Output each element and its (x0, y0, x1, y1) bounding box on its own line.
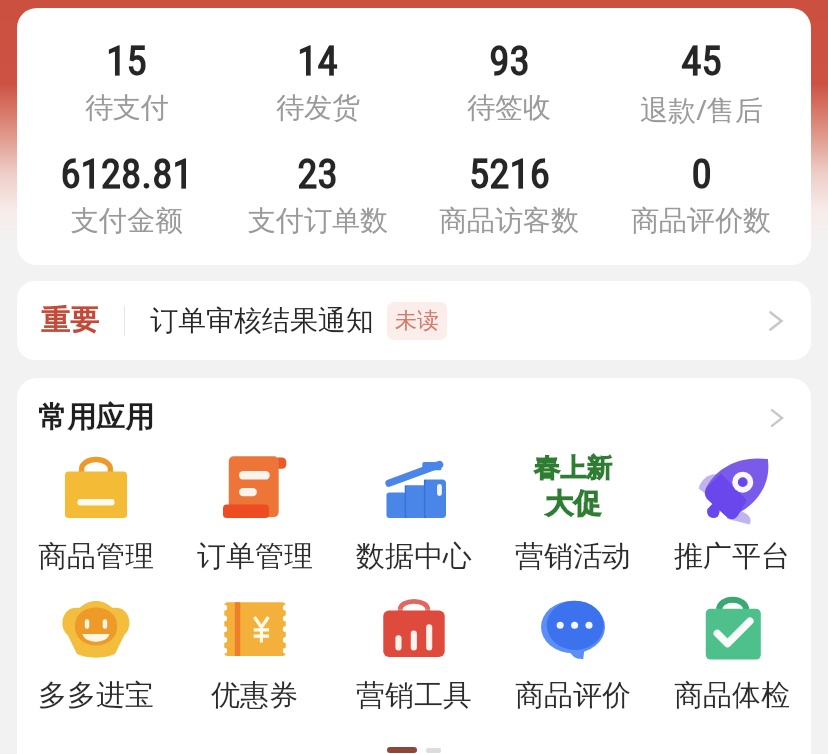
button[interactable]: 营销工具 (334, 593, 493, 714)
staticText: 商品评价数 (631, 203, 771, 238)
staticText: 商品评价 (515, 677, 631, 714)
staticText: 待发货 (276, 90, 360, 125)
other: More (763, 308, 789, 334)
staticText: 5216 (469, 150, 550, 198)
button[interactable]: 商品评价 (493, 593, 652, 714)
button[interactable]: 春上新 (493, 454, 652, 575)
staticText: 商品访客数 (439, 203, 579, 238)
staticText: 23 (297, 150, 338, 198)
staticText: 93 (489, 37, 530, 85)
staticText: 未读 (395, 307, 439, 335)
staticText: 重要 (41, 302, 99, 339)
staticText: 支付金额 (71, 203, 183, 238)
button[interactable]: 数据中心 (334, 454, 493, 575)
staticText: 45 (681, 37, 722, 85)
staticText: 支付订单数 (248, 203, 388, 238)
button[interactable]: 商品体检 (652, 593, 811, 714)
button[interactable]: 93 (413, 37, 605, 125)
staticText: 退款/售后 (640, 90, 763, 128)
staticText: 待支付 (85, 90, 169, 125)
button[interactable]: 多多进宝 (17, 593, 175, 714)
button[interactable]: 重要 (17, 281, 811, 360)
button[interactable]: 推广平台 (652, 454, 811, 575)
button[interactable]: 优惠券 (175, 593, 334, 714)
button[interactable]: 订单管理 (175, 454, 334, 575)
staticText: 订单管理 (197, 538, 313, 575)
staticText: 营销工具 (356, 677, 472, 714)
button[interactable]: 6128.81 (31, 150, 222, 238)
staticText: 订单审核结果通知 (150, 303, 374, 338)
staticText: 15 (106, 37, 147, 85)
button[interactable]: 商品管理 (17, 454, 175, 575)
staticText: 优惠券 (211, 677, 298, 714)
button[interactable]: 0 (605, 150, 797, 238)
staticText: 春上新 (534, 452, 612, 485)
button[interactable]: 常用应用 (17, 378, 811, 436)
staticText: 推广平台 (674, 538, 790, 575)
staticText: 6128.81 (60, 150, 193, 198)
button[interactable]: 5216 (413, 150, 605, 238)
staticText: 待签收 (467, 90, 551, 125)
staticText: 常用应用 (38, 399, 154, 436)
staticText: 0 (691, 150, 712, 198)
other: More (765, 406, 789, 430)
staticText: 大促 (545, 486, 601, 521)
staticText: 营销活动 (515, 538, 631, 575)
button[interactable]: 23 (222, 150, 413, 238)
staticText: 多多进宝 (38, 677, 154, 714)
button[interactable]: 45 (605, 37, 797, 128)
button[interactable]: 15 (31, 37, 222, 125)
staticText: 14 (297, 37, 338, 85)
button[interactable]: 14 (222, 37, 413, 125)
staticText: 商品管理 (38, 538, 154, 575)
staticText: 商品体检 (674, 677, 790, 714)
staticText: 数据中心 (356, 538, 472, 575)
